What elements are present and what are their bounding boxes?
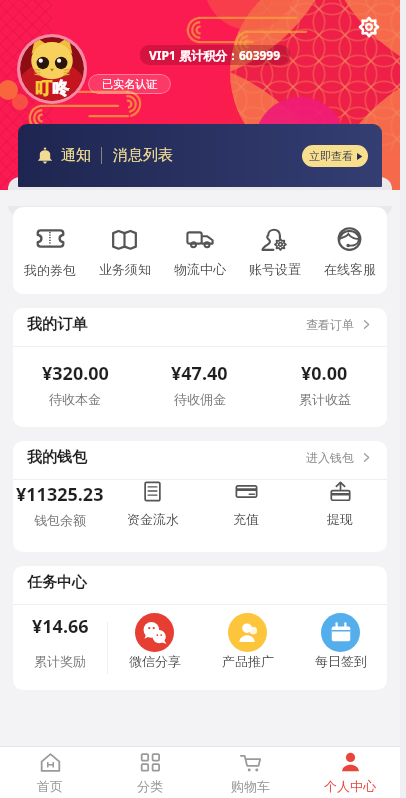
staticText: 咚 xyxy=(52,78,69,99)
staticText: 已实名认证 xyxy=(102,77,157,91)
button[interactable]: ¥47.40 xyxy=(137,347,262,427)
button[interactable]: 进入钱包 xyxy=(302,446,375,469)
staticText: 累计收益 xyxy=(299,391,351,407)
staticText: 首页 xyxy=(37,778,63,794)
button[interactable]: 产品推广 xyxy=(201,605,294,690)
staticText: 账号设置 xyxy=(249,261,301,277)
staticText: 我的钱包 xyxy=(27,448,87,467)
staticText: VIP1 累计积分：603999 xyxy=(149,47,281,63)
button[interactable]: ¥0.00 xyxy=(262,347,387,427)
button[interactable]: 每日签到 xyxy=(294,605,387,690)
button[interactable]: VIP1 累计积分：603999 xyxy=(140,45,290,65)
staticText: 资金流水 xyxy=(127,511,179,527)
button[interactable]: ¥11325.23 xyxy=(13,480,106,552)
staticText: 购物车 xyxy=(231,778,270,794)
staticText: 立即查看 xyxy=(309,149,353,163)
staticText: 微信分享 xyxy=(129,653,181,669)
button[interactable]: 已实名认证 xyxy=(88,74,171,94)
button[interactable]: 查看订单 xyxy=(302,313,375,336)
staticText: ¥14.66 xyxy=(32,614,89,639)
button[interactable]: 充值 xyxy=(199,480,293,552)
button[interactable]: 购物车 xyxy=(200,747,300,798)
button[interactable]: 立即查看 xyxy=(302,145,368,167)
button[interactable]: 资金流水 xyxy=(106,480,199,552)
staticText: 每日签到 xyxy=(315,653,367,669)
staticText: 任务中心 xyxy=(27,573,87,592)
button[interactable]: 通知 xyxy=(18,124,382,187)
staticText: 我的订单 xyxy=(27,315,87,334)
button[interactable]: 我的券包 xyxy=(13,207,87,294)
staticText: ¥0.00 xyxy=(301,361,348,386)
button[interactable]: 物流中心 xyxy=(162,207,237,294)
staticText: 在线客服 xyxy=(324,261,376,277)
button[interactable]: Settings xyxy=(352,10,386,44)
staticText: 我的券包 xyxy=(24,262,76,278)
staticText: ¥47.40 xyxy=(171,361,228,386)
staticText: 待收本金 xyxy=(49,391,101,407)
staticText: 进入钱包 xyxy=(306,450,354,465)
staticText: 钱包余额 xyxy=(34,512,86,528)
staticText: 提现 xyxy=(327,511,353,527)
staticText: 消息列表 xyxy=(113,146,173,165)
button[interactable]: 提现 xyxy=(293,480,387,552)
button[interactable]: ¥320.00 xyxy=(13,347,137,427)
staticText: ¥11325.23 xyxy=(16,482,104,507)
staticText: 叮 xyxy=(35,78,52,99)
staticText: 分类 xyxy=(137,778,163,794)
button[interactable]: 分类 xyxy=(100,747,200,798)
staticText: 业务须知 xyxy=(99,261,151,277)
button[interactable]: 个人中心 xyxy=(300,747,400,798)
button[interactable]: 首页 xyxy=(0,747,100,798)
button[interactable]: 账号设置 xyxy=(237,207,312,294)
staticText: 个人中心 xyxy=(324,778,376,794)
staticText: 累计奖励 xyxy=(34,653,86,669)
staticText: 充值 xyxy=(233,511,259,527)
staticText: 待收佣金 xyxy=(174,391,226,407)
staticText: 通知 xyxy=(61,146,91,165)
button[interactable]: 微信分享 xyxy=(108,605,201,690)
button[interactable]: 在线客服 xyxy=(312,207,387,294)
button[interactable]: 业务须知 xyxy=(87,207,162,294)
staticText: 查看订单 xyxy=(306,317,354,332)
staticText: 产品推广 xyxy=(222,653,274,669)
button[interactable]: Avatar xyxy=(20,37,84,101)
button[interactable]: ¥14.66 xyxy=(13,605,107,690)
staticText: 物流中心 xyxy=(174,261,226,277)
staticText: ¥320.00 xyxy=(42,361,109,386)
